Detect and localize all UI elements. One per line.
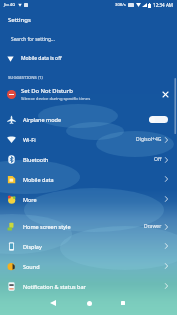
staticText: Set Do Not Disturb	[21, 87, 73, 95]
button[interactable]: More	[0, 189, 177, 209]
button[interactable]: Mobile data	[0, 169, 177, 189]
staticText: Notification & status bar	[23, 283, 86, 290]
button[interactable]: Set Do Not Disturb	[0, 84, 177, 104]
button[interactable]: Home screen style	[0, 216, 177, 236]
staticText: 12:34 AM	[153, 2, 174, 8]
staticText: Display	[23, 243, 42, 250]
staticText: Jio 4G	[4, 2, 16, 8]
staticText: Mobile data	[23, 176, 54, 183]
button[interactable]: Wi-Fi	[0, 129, 177, 149]
staticText: Airplane mode	[23, 116, 61, 123]
button[interactable]: Display	[0, 236, 177, 256]
staticText: Wi-Fi	[23, 136, 36, 143]
button[interactable]: Notification & status bar	[0, 276, 177, 296]
staticText: Mobile data is off	[21, 55, 62, 62]
staticText: Search for setting...	[11, 36, 55, 43]
button[interactable]: Airplane mode	[0, 109, 177, 129]
staticText: Bluetooth	[23, 156, 49, 163]
button[interactable]: Bluetooth	[0, 149, 177, 169]
button[interactable]: Home	[79, 293, 99, 313]
button[interactable]: Search for setting...	[0, 31, 177, 47]
button[interactable]: Dismiss suggestion	[160, 89, 170, 99]
button[interactable]: Sound	[0, 256, 177, 276]
staticText: Drawer	[144, 223, 162, 230]
staticText: SUGGESTIONS (1)	[8, 75, 43, 81]
button[interactable]: Back	[43, 293, 63, 313]
staticText: 308/s	[115, 2, 126, 8]
button[interactable]: Recents	[113, 293, 133, 313]
staticText: More	[23, 196, 37, 203]
staticText: Digisol+4G	[136, 136, 162, 143]
staticText: Silence device during specific times	[21, 96, 91, 102]
button[interactable]: Mobile data is off	[0, 50, 177, 66]
staticText: Settings	[8, 16, 31, 24]
staticText: Home screen style	[23, 223, 71, 230]
staticText: Sound	[23, 263, 40, 270]
staticText: Off	[154, 156, 162, 163]
